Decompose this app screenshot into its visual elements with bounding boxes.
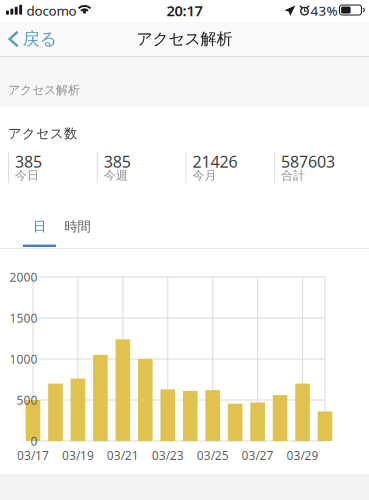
- staticText: 587603: [281, 151, 335, 172]
- staticText: 1500: [9, 310, 37, 326]
- button[interactable]: 日: [23, 205, 56, 248]
- staticText: 時間: [64, 218, 90, 235]
- staticText: 03/27: [242, 447, 274, 463]
- button[interactable]: 時間: [56, 205, 99, 248]
- button[interactable]: 戻る: [0, 22, 67, 56]
- staticText: 03/25: [197, 447, 229, 463]
- staticText: 500: [16, 392, 37, 408]
- staticText: docomo: [26, 2, 76, 19]
- staticText: アクセス解析: [8, 83, 80, 97]
- staticText: 03/17: [17, 447, 49, 463]
- staticText: 0: [30, 433, 37, 449]
- staticText: 今日: [15, 168, 39, 183]
- staticText: 20:17: [166, 1, 202, 20]
- staticText: 03/29: [286, 447, 318, 463]
- staticText: 03/23: [152, 447, 184, 463]
- staticText: アクセス解析: [136, 29, 232, 49]
- staticText: 43%: [310, 2, 337, 19]
- staticText: 385: [15, 151, 42, 172]
- staticText: 2000: [9, 269, 37, 285]
- staticText: 合計: [281, 168, 305, 183]
- staticText: 385: [104, 151, 131, 172]
- staticText: 03/21: [107, 447, 139, 463]
- staticText: 戻る: [22, 28, 57, 50]
- staticText: アクセス数: [8, 125, 77, 142]
- staticText: 今月: [192, 168, 216, 183]
- staticText: 今週: [104, 168, 128, 183]
- staticText: 1000: [9, 351, 37, 367]
- staticText: 03/19: [62, 447, 94, 463]
- staticText: 日: [33, 218, 46, 235]
- staticText: 21426: [192, 151, 237, 172]
